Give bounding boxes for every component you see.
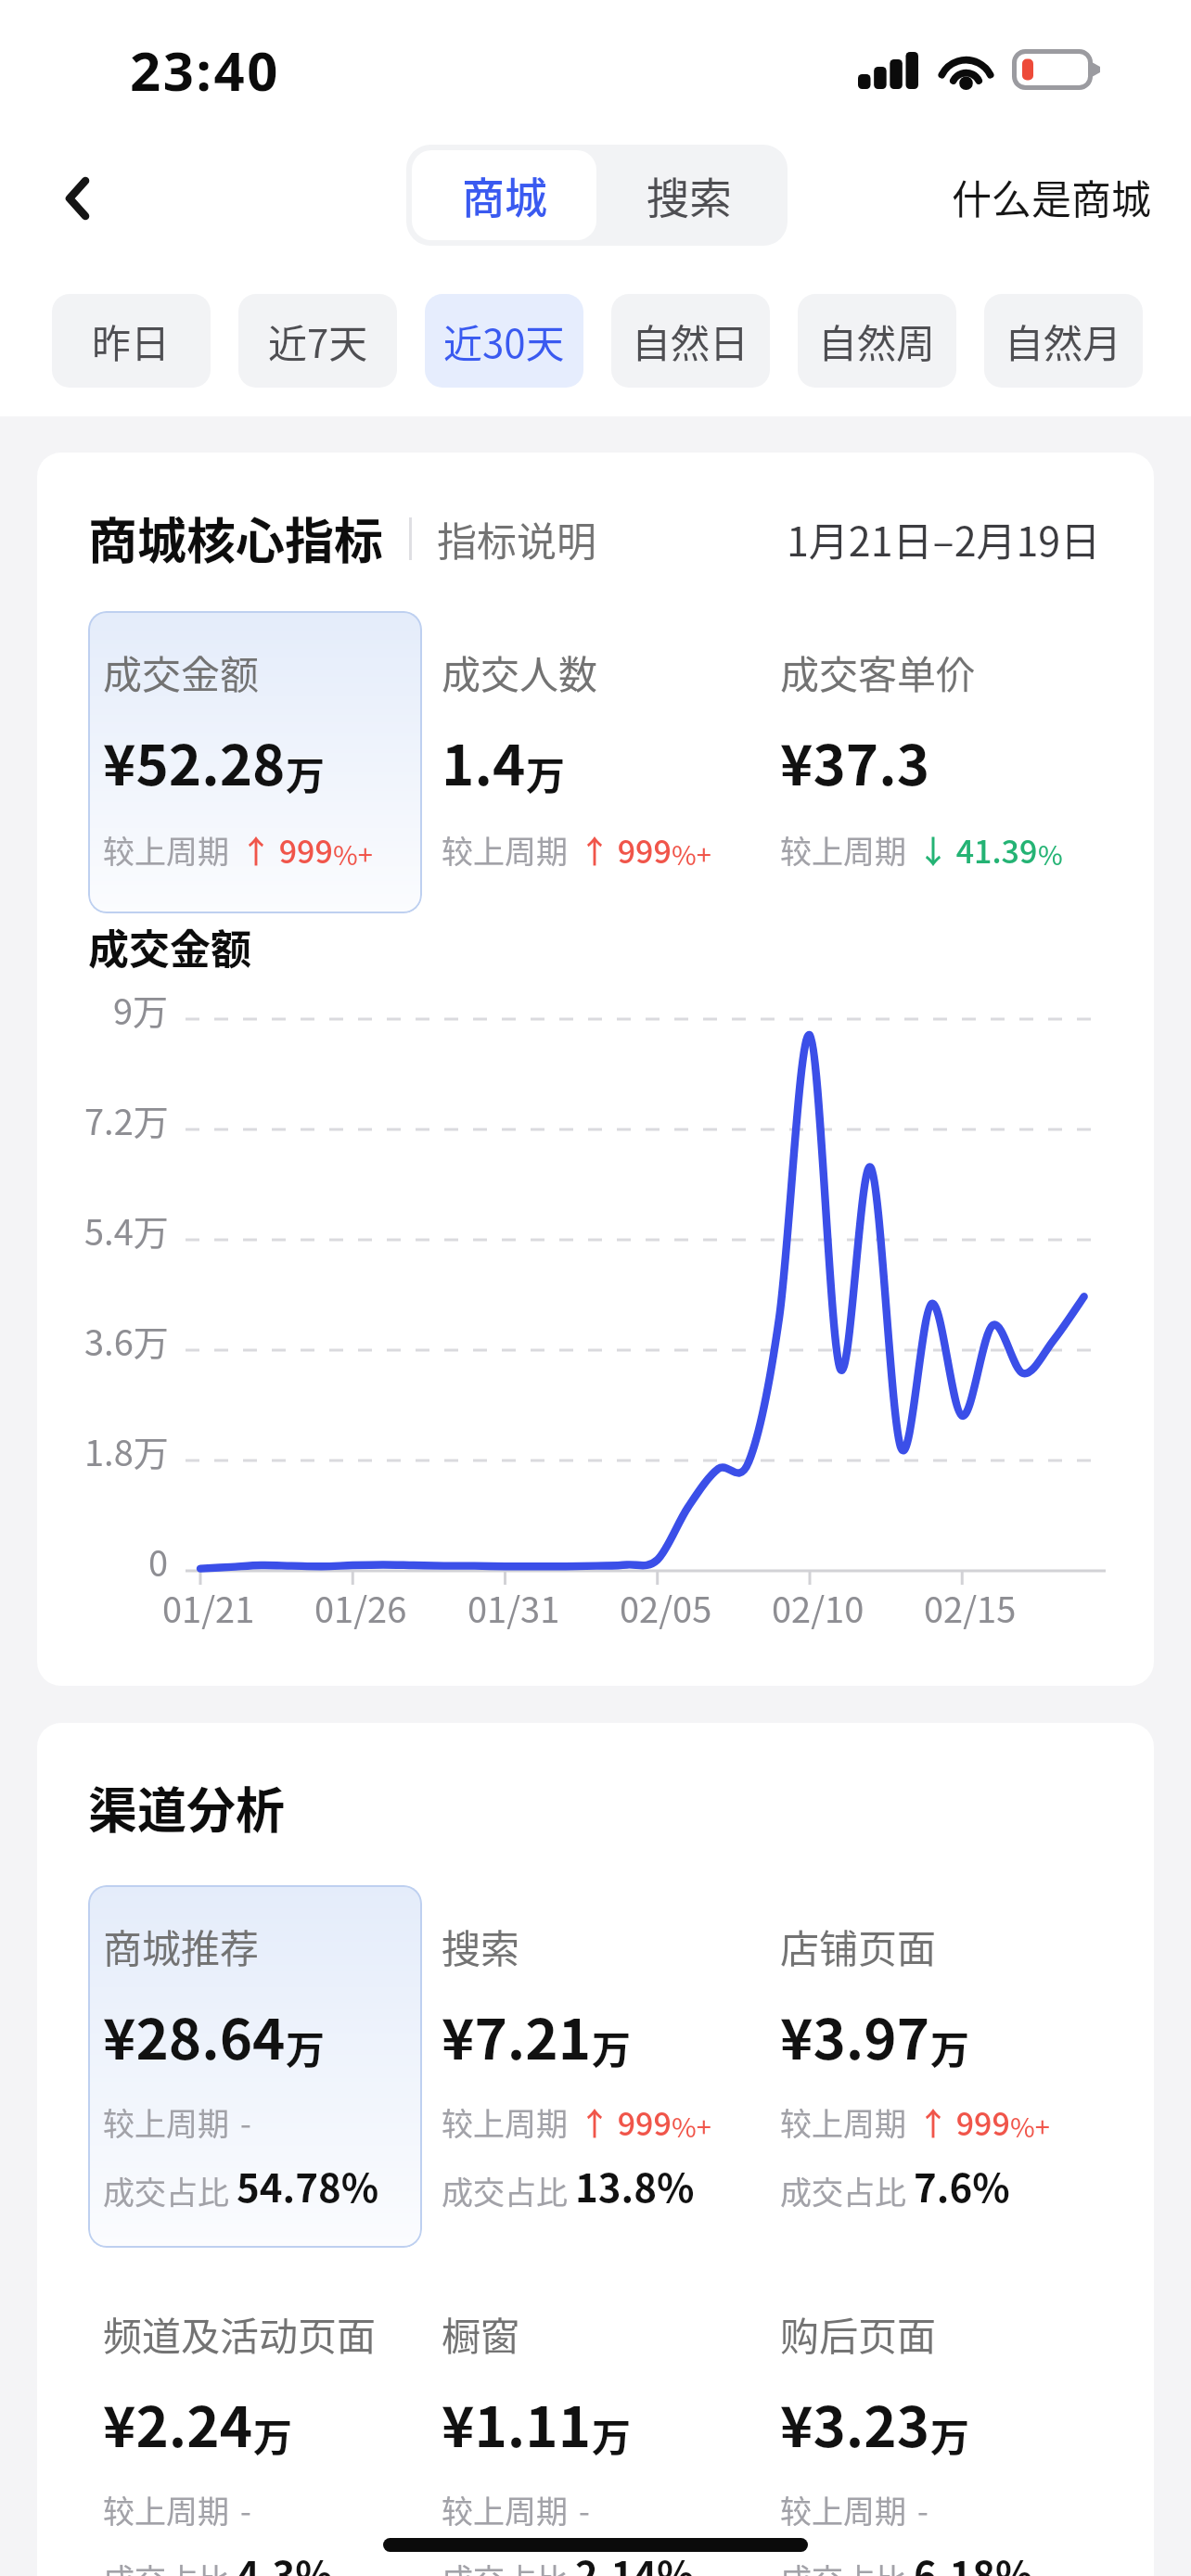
button[interactable]: 什么是商城 <box>935 159 1168 235</box>
staticText: 什么是商城 <box>952 168 1151 225</box>
staticText: % <box>1038 834 1063 873</box>
staticText: - <box>240 2099 251 2145</box>
staticText: 2.14% <box>575 2544 695 2576</box>
staticText: 0 <box>148 1536 169 1587</box>
staticText: ¥3.97 <box>780 1995 930 2075</box>
staticText: 万 <box>253 2406 293 2463</box>
staticText: 较上周期 <box>780 2099 906 2145</box>
staticText: 搜索 <box>442 1918 520 1974</box>
staticText: 成交客单价 <box>780 644 976 700</box>
staticText: 1月21日–2月19日 <box>787 510 1101 567</box>
button[interactable]: 成交金额 <box>88 611 422 913</box>
staticText: 成交人数 <box>442 644 598 700</box>
staticText: 较上周期 <box>780 2487 906 2532</box>
staticText: 万 <box>930 2406 970 2463</box>
staticText: 5.4万 <box>84 1205 169 1256</box>
button[interactable]: 商城推荐 <box>88 1885 422 2248</box>
staticText: 成交占比 <box>442 2168 568 2213</box>
button[interactable]: 搜索 <box>596 150 782 240</box>
staticText: %+ <box>1010 2106 1050 2145</box>
button[interactable]: 指标说明 <box>437 510 596 567</box>
staticText: 较上周期 <box>103 2099 229 2145</box>
staticText: 指标说明 <box>437 510 596 567</box>
staticText: ↑ 999 <box>579 2099 672 2145</box>
staticText: 成交占比 <box>103 2168 229 2213</box>
button[interactable]: 搜索 <box>427 1885 747 2248</box>
staticText: 7.2万 <box>84 1094 169 1145</box>
staticText: ¥1.11 <box>442 2382 592 2463</box>
staticText: 较上周期 <box>780 827 906 873</box>
staticText: ¥7.21 <box>442 1995 592 2075</box>
staticText: 橱窗 <box>442 2305 520 2362</box>
staticText: %+ <box>672 834 711 873</box>
staticText: 自然日 <box>632 312 749 369</box>
button[interactable]: 自然日 <box>611 294 770 388</box>
staticText: 3.6万 <box>84 1315 169 1366</box>
button[interactable]: 店铺页面 <box>765 1885 1085 2248</box>
staticText: ↑ 999 <box>240 827 333 873</box>
staticText: 较上周期 <box>442 2487 568 2532</box>
staticText: 万 <box>930 2019 970 2075</box>
staticText: 商城 <box>462 164 547 226</box>
staticText: %+ <box>333 834 373 873</box>
button[interactable]: 橱窗 <box>427 2273 747 2576</box>
staticText: 02/10 <box>772 1582 864 1633</box>
staticText: - <box>917 2487 928 2532</box>
staticText: 万 <box>592 2019 632 2075</box>
staticText: ↑ 999 <box>579 827 672 873</box>
staticText: 万 <box>286 745 326 801</box>
staticText: 万 <box>526 745 566 801</box>
staticText: 昨日 <box>92 312 171 369</box>
staticText: 购后页面 <box>780 2305 937 2362</box>
staticText: 9万 <box>113 984 169 1035</box>
staticText: 成交占比 <box>103 2556 229 2576</box>
staticText: 13.8% <box>575 2157 695 2213</box>
staticText: 商城核心指标 <box>88 503 383 574</box>
staticText: 万 <box>286 2019 326 2075</box>
staticText: 搜索 <box>647 164 732 226</box>
staticText: 渠道分析 <box>88 1772 285 1843</box>
button[interactable]: 商城 <box>412 150 596 240</box>
staticText: ¥2.24 <box>103 2382 253 2463</box>
staticText: 较上周期 <box>103 2487 229 2532</box>
staticText: 23:40 <box>130 33 281 107</box>
staticText: 近7天 <box>268 312 368 369</box>
staticText: 商城推荐 <box>103 1918 260 1974</box>
staticText: ¥52.28 <box>103 721 286 801</box>
staticText: 成交金额 <box>88 917 251 976</box>
staticText: 近30天 <box>443 312 565 369</box>
staticText: 成交占比 <box>780 2556 906 2576</box>
button[interactable]: 自然月 <box>984 294 1143 388</box>
button[interactable]: 自然周 <box>798 294 956 388</box>
staticText: 1.4 <box>442 721 526 801</box>
button[interactable]: 昨日 <box>52 294 211 388</box>
staticText: - <box>579 2487 590 2532</box>
staticText: ¥37.3 <box>780 721 930 801</box>
staticText: 自然月 <box>1005 312 1122 369</box>
button[interactable]: 购后页面 <box>765 2273 1085 2576</box>
staticText: 6.18% <box>914 2544 1033 2576</box>
button[interactable]: 成交人数 <box>427 611 747 913</box>
button[interactable]: 频道及活动页面 <box>88 2273 408 2576</box>
staticText: 1.8万 <box>84 1425 169 1476</box>
staticText: 02/05 <box>620 1582 712 1633</box>
button[interactable]: Back <box>19 134 135 259</box>
staticText: 成交金额 <box>103 644 260 700</box>
staticText: 较上周期 <box>442 827 568 873</box>
button[interactable]: 近7天 <box>238 294 397 388</box>
staticText: - <box>240 2487 251 2532</box>
staticText: ¥28.64 <box>103 1995 286 2075</box>
staticText: 01/31 <box>467 1582 560 1633</box>
staticText: 成交占比 <box>780 2168 906 2213</box>
staticText: 较上周期 <box>103 827 229 873</box>
staticText: ↓ 41.39 <box>917 827 1038 873</box>
button[interactable]: 近30天 <box>425 294 583 388</box>
staticText: 较上周期 <box>442 2099 568 2145</box>
staticText: 自然周 <box>818 312 936 369</box>
staticText: 频道及活动页面 <box>103 2305 377 2362</box>
button[interactable]: 成交客单价 <box>765 611 1085 913</box>
staticText: 54.78% <box>237 2157 379 2213</box>
staticText: ¥3.23 <box>780 2382 930 2463</box>
staticText: 01/21 <box>162 1582 255 1633</box>
staticText: 万 <box>592 2406 632 2463</box>
